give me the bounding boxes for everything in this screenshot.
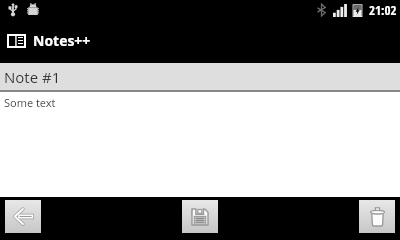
staticText: Notes++ (33, 31, 91, 50)
staticText: Note #1 (4, 67, 61, 87)
button[interactable]: Delete (359, 200, 395, 233)
button[interactable]: Note #1 (0, 63, 400, 110)
staticText: Some text (4, 95, 56, 110)
button[interactable]: Save (182, 200, 218, 233)
button[interactable]: Back (5, 200, 41, 233)
staticText: 21:02 (369, 1, 397, 19)
